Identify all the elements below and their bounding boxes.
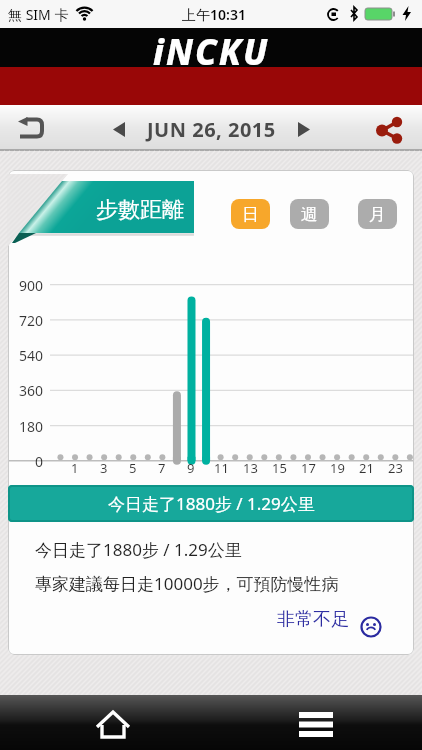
staticText: 360 <box>19 381 44 400</box>
staticText: 7 <box>158 459 166 477</box>
staticText: 無 SIM 卡 <box>8 5 69 24</box>
button[interactable] <box>103 114 135 144</box>
button[interactable] <box>10 110 50 146</box>
staticText: 專家建議每日走10000步，可預防慢性病 <box>35 572 339 595</box>
staticText: iNCKU <box>153 28 270 67</box>
staticText: 720 <box>19 311 44 330</box>
staticText: 21 <box>359 459 374 477</box>
button[interactable] <box>85 705 141 745</box>
staticText: 日 <box>242 204 259 225</box>
button[interactable]: 週 <box>290 199 329 229</box>
staticText: 900 <box>19 276 44 295</box>
staticText: 步數距離 <box>96 196 184 224</box>
button[interactable] <box>288 114 320 144</box>
staticText: 9 <box>187 459 195 477</box>
staticText: 540 <box>19 346 44 365</box>
button[interactable]: 月 <box>358 199 397 229</box>
staticText: 5 <box>129 459 137 477</box>
button[interactable] <box>366 113 412 147</box>
staticText: 17 <box>301 459 316 477</box>
staticText: 11 <box>214 459 229 477</box>
staticText: 今日走了1880步 / 1.29公里 <box>35 538 242 561</box>
staticText: 0 <box>35 452 44 471</box>
staticText: 23 <box>388 459 403 477</box>
staticText: 週 <box>301 204 318 225</box>
staticText: 15 <box>272 459 287 477</box>
staticText: JUN 26, 2015 <box>147 116 276 143</box>
staticText: 今日走了1880步 / 1.29公里 <box>108 492 315 515</box>
staticText: 月 <box>369 204 386 225</box>
staticText: 19 <box>330 459 345 477</box>
staticText: 上午10:31 <box>182 5 246 24</box>
button[interactable] <box>288 705 344 745</box>
staticText: 非常不足 <box>277 608 349 631</box>
staticText: 1 <box>71 459 79 477</box>
staticText: 13 <box>243 459 258 477</box>
staticText: 3 <box>100 459 108 477</box>
staticText: 180 <box>19 417 44 436</box>
button[interactable]: 日 <box>231 199 270 229</box>
